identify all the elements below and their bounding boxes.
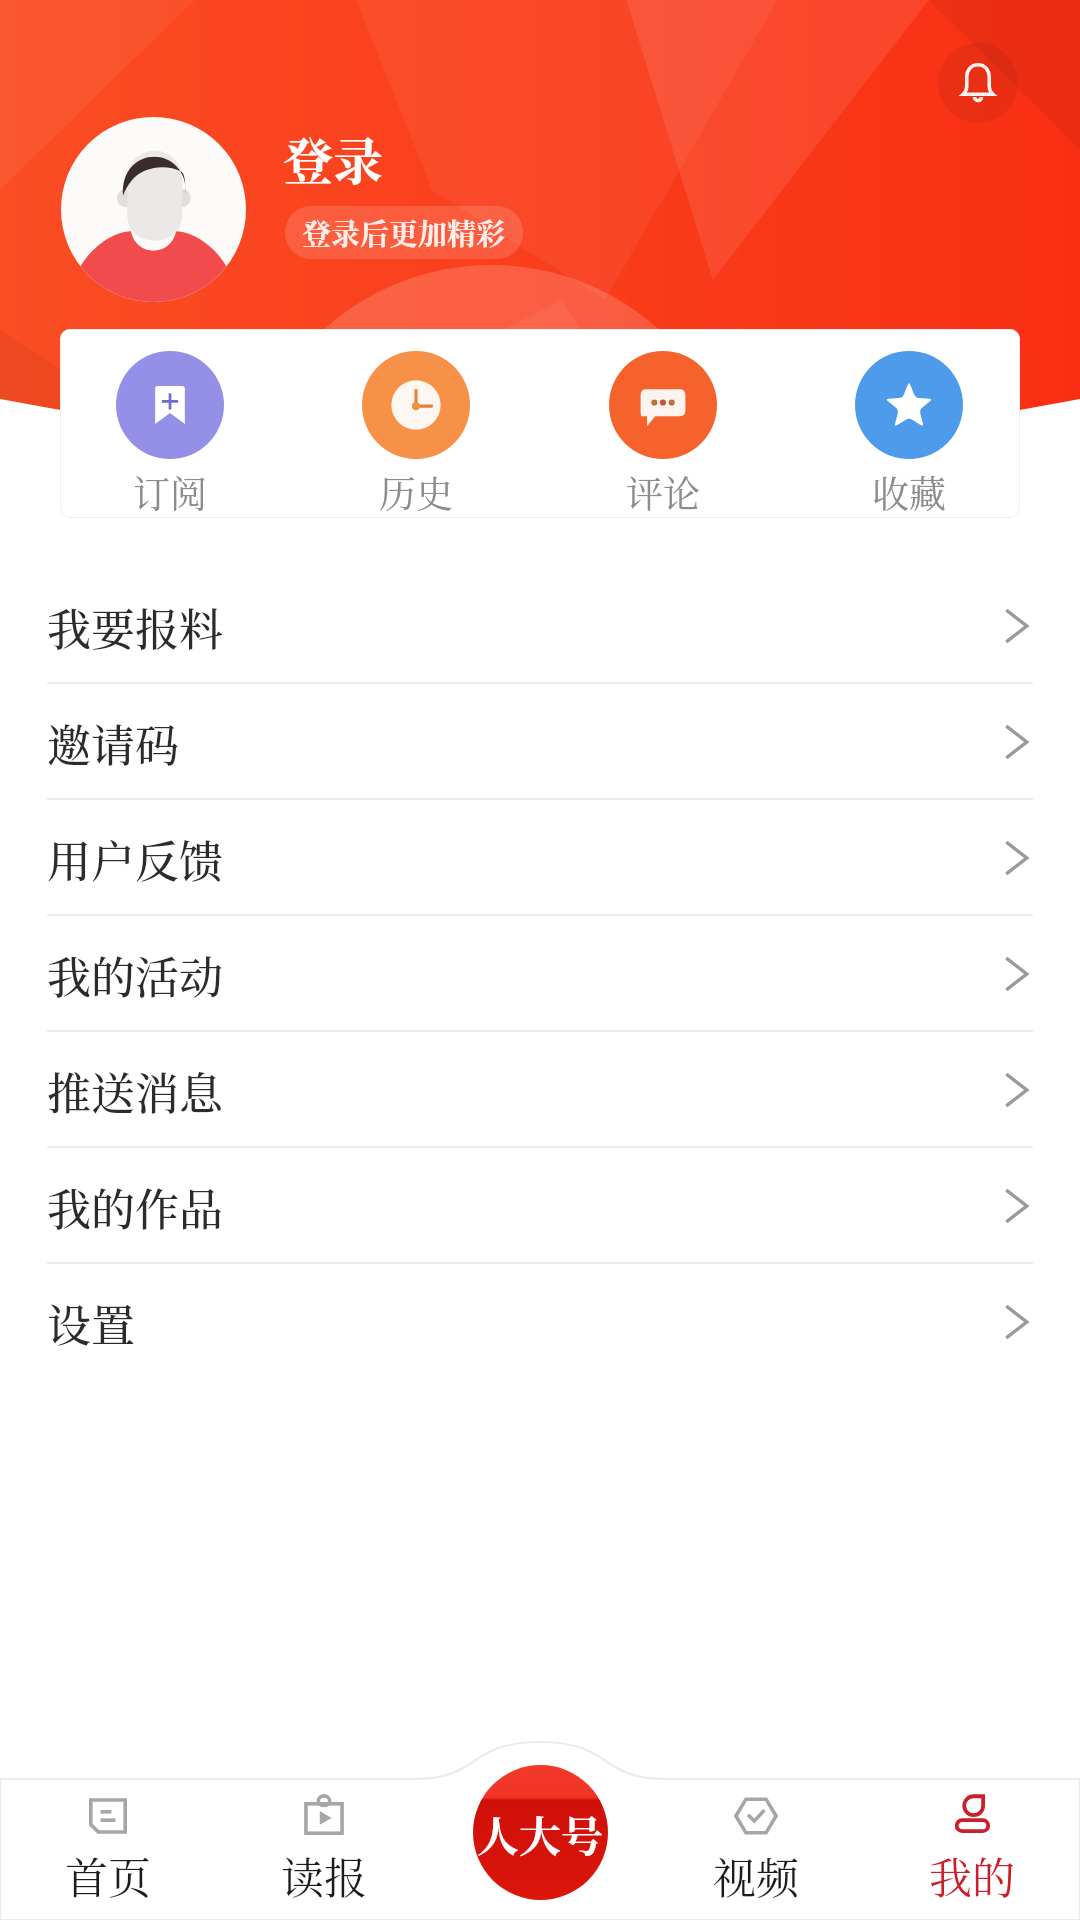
staticText: 收藏 [872,465,946,518]
button[interactable]: 历史 [316,329,516,518]
button[interactable]: 设置 [0,1264,1080,1380]
staticText: 人大号 [477,1804,604,1864]
staticText: 读报 [281,1845,367,1907]
button[interactable]: 登录 [283,122,383,194]
staticText: 我的作品 [47,1175,223,1238]
staticText: 邀请码 [47,711,179,774]
button[interactable]: 订阅 [70,329,270,518]
staticText: 我要报料 [47,595,223,658]
button[interactable]: 邀请码 [0,684,1080,800]
button[interactable]: 收藏 [809,329,1009,518]
button[interactable]: 读报 [216,1740,432,1920]
button[interactable]: 评论 [563,329,763,518]
button[interactable]: 用户反馈 [0,800,1080,916]
button[interactable]: 视频 [648,1740,864,1920]
button[interactable]: Notifications [938,43,1018,123]
staticText: 设置 [47,1291,135,1354]
button[interactable]: Avatar [61,117,246,302]
staticText: 登录后更加精彩 [302,212,506,254]
staticText: 我的活动 [47,943,223,1006]
button[interactable]: 首页 [0,1740,216,1920]
button[interactable]: 我的作品 [0,1148,1080,1264]
staticText: 历史 [379,465,453,518]
button[interactable]: 我要报料 [0,568,1080,684]
button[interactable]: 我的 [864,1740,1080,1920]
staticText: 视频 [713,1845,799,1907]
staticText: 评论 [626,465,700,518]
staticText: 用户反馈 [47,827,223,890]
staticText: 推送消息 [47,1059,223,1122]
button[interactable]: 登录后更加精彩 [285,206,523,259]
button[interactable]: 我的活动 [0,916,1080,1032]
button[interactable]: 推送消息 [0,1032,1080,1148]
button[interactable]: 人大号 [473,1765,608,1900]
staticText: 订阅 [133,465,207,518]
staticText: 我的 [929,1845,1015,1907]
staticText: 首页 [65,1845,151,1907]
